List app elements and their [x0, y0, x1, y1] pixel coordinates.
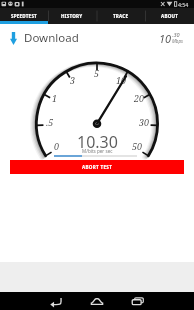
button[interactable]: ABORT TEST	[10, 160, 184, 174]
staticText: 20	[134, 92, 145, 104]
staticText: 10	[116, 74, 127, 86]
button[interactable]: Recents	[124, 292, 152, 310]
staticText: 4:54	[178, 1, 189, 8]
button[interactable]: TRACE	[96, 8, 145, 24]
staticText: .5	[46, 116, 54, 128]
staticText: Mbps	[172, 38, 183, 44]
staticText: ABORT TEST	[82, 164, 113, 170]
button[interactable]: HISTORY	[48, 8, 96, 24]
staticText: 10.30	[77, 131, 118, 149]
staticText: SPEEDTEST	[11, 13, 37, 19]
staticText: M/bits per sec	[82, 148, 113, 154]
staticText: 5	[94, 67, 100, 79]
staticText: 50	[132, 140, 143, 152]
staticText: TRACE	[113, 13, 129, 19]
staticText: ABOUT	[161, 13, 178, 19]
button[interactable]: SPEEDTEST	[0, 8, 48, 24]
staticText: 0	[54, 140, 60, 152]
staticText: HISTORY	[61, 13, 83, 19]
staticText: 3	[70, 74, 76, 86]
button[interactable]: Home	[83, 292, 111, 310]
button[interactable]: ABOUT	[145, 8, 194, 24]
staticText: 30	[139, 116, 150, 128]
staticText: 1	[52, 92, 58, 104]
button[interactable]: Back	[42, 292, 70, 310]
staticText: Download	[24, 30, 79, 46]
staticText: 10	[159, 31, 172, 46]
staticText: .30	[172, 31, 180, 38]
